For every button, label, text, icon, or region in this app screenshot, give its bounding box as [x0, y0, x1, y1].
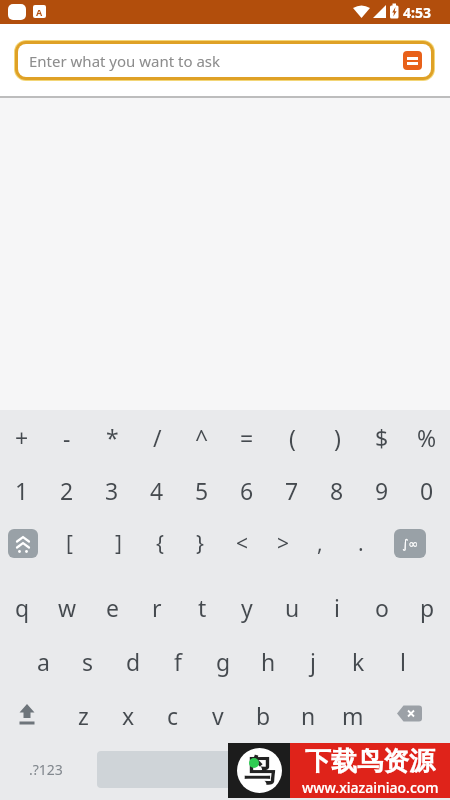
- staticText: {: [156, 529, 164, 558]
- button[interactable]: ]: [96, 521, 140, 565]
- button[interactable]: ∫∞: [394, 529, 426, 558]
- button[interactable]: [403, 51, 422, 70]
- button[interactable]: l: [381, 639, 425, 683]
- staticText: q: [15, 592, 30, 623]
- staticText: Enter what you want to ask: [29, 51, 221, 71]
- button[interactable]: %: [405, 415, 449, 459]
- button[interactable]: .?123: [20, 754, 72, 784]
- button[interactable]: /: [135, 415, 179, 459]
- button[interactable]: s: [66, 639, 110, 683]
- button[interactable]: [8, 529, 38, 558]
- button[interactable]: 0: [405, 468, 449, 512]
- button[interactable]: 9: [360, 468, 404, 512]
- staticText: (: [289, 422, 296, 453]
- button[interactable]: d: [111, 639, 155, 683]
- staticText: <: [236, 529, 249, 558]
- button[interactable]: =: [225, 415, 269, 459]
- button[interactable]: k: [336, 639, 380, 683]
- button[interactable]: [97, 751, 353, 788]
- staticText: p: [420, 592, 435, 623]
- staticText: c: [167, 700, 179, 731]
- button[interactable]: 5: [180, 468, 224, 512]
- staticText: r: [152, 592, 162, 623]
- button[interactable]: b: [241, 693, 285, 737]
- staticText: 9: [375, 475, 389, 506]
- button[interactable]: r: [135, 585, 179, 629]
- button[interactable]: 1: [0, 468, 44, 512]
- staticText: 7: [285, 475, 299, 506]
- button[interactable]: -: [45, 415, 89, 459]
- staticText: 鸟: [244, 751, 275, 790]
- button[interactable]: ,: [298, 521, 342, 565]
- staticText: .: [358, 529, 364, 558]
- button[interactable]: j: [291, 639, 335, 683]
- button[interactable]: n: [286, 693, 330, 737]
- button[interactable]: o: [360, 585, 404, 629]
- button[interactable]: 8: [315, 468, 359, 512]
- button[interactable]: }: [178, 521, 222, 565]
- button[interactable]: 7: [270, 468, 314, 512]
- button[interactable]: u: [270, 585, 314, 629]
- button[interactable]: +: [0, 415, 44, 459]
- button[interactable]: i: [315, 585, 359, 629]
- button[interactable]: >: [261, 521, 305, 565]
- button[interactable]: 2: [45, 468, 89, 512]
- staticText: y: [241, 592, 253, 623]
- button[interactable]: ): [315, 415, 359, 459]
- button[interactable]: z: [61, 693, 105, 737]
- button[interactable]: a: [21, 639, 65, 683]
- staticText: -: [63, 422, 71, 453]
- button[interactable]: <: [220, 521, 264, 565]
- staticText: ): [334, 422, 341, 453]
- button[interactable]: y: [225, 585, 269, 629]
- staticText: i: [334, 592, 340, 623]
- staticText: 0: [420, 475, 434, 506]
- button[interactable]: .: [339, 521, 383, 565]
- staticText: .?123: [29, 760, 63, 779]
- button[interactable]: v: [196, 693, 240, 737]
- staticText: ^: [195, 422, 209, 453]
- button[interactable]: g: [201, 639, 245, 683]
- button[interactable]: $: [360, 415, 404, 459]
- staticText: 下载鸟资源: [305, 745, 435, 778]
- staticText: 3: [105, 475, 119, 506]
- button[interactable]: 4: [135, 468, 179, 512]
- staticText: x: [122, 700, 135, 731]
- button[interactable]: Enter what you want to ask: [18, 44, 431, 77]
- staticText: t: [198, 592, 207, 623]
- button[interactable]: c: [151, 693, 195, 737]
- button[interactable]: t: [180, 585, 224, 629]
- staticText: w: [58, 592, 77, 623]
- button[interactable]: p: [405, 585, 449, 629]
- button[interactable]: ^: [180, 415, 224, 459]
- staticText: g: [216, 646, 231, 677]
- button[interactable]: w: [45, 585, 89, 629]
- staticText: }: [196, 529, 204, 558]
- staticText: 1: [15, 475, 29, 506]
- staticText: e: [106, 592, 119, 623]
- button[interactable]: (: [270, 415, 314, 459]
- staticText: s: [82, 646, 94, 677]
- button[interactable]: f: [156, 639, 200, 683]
- button[interactable]: 3: [90, 468, 134, 512]
- staticText: ,: [317, 529, 323, 558]
- button[interactable]: x: [106, 693, 150, 737]
- button[interactable]: e: [90, 585, 134, 629]
- button[interactable]: {: [138, 521, 182, 565]
- button[interactable]: h: [246, 639, 290, 683]
- staticText: o: [375, 592, 389, 623]
- staticText: ∫∞: [402, 537, 419, 551]
- button[interactable]: *: [90, 415, 134, 459]
- staticText: n: [301, 700, 316, 731]
- button[interactable]: q: [0, 585, 44, 629]
- staticText: /: [153, 422, 162, 453]
- button[interactable]: m: [331, 693, 375, 737]
- button[interactable]: [397, 705, 422, 722]
- button[interactable]: [16, 703, 40, 727]
- staticText: d: [126, 646, 141, 677]
- staticText: +: [15, 422, 29, 453]
- staticText: u: [285, 592, 300, 623]
- button[interactable]: [: [47, 521, 91, 565]
- button[interactable]: 6: [225, 468, 269, 512]
- staticText: >: [277, 529, 290, 558]
